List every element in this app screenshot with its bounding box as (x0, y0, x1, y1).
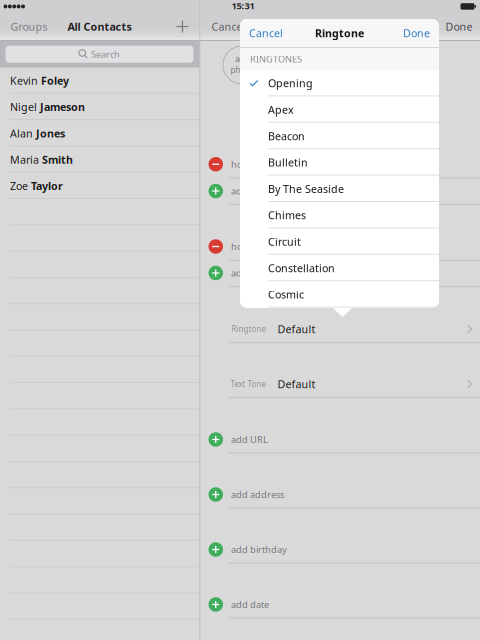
staticText: Bulletin (268, 155, 308, 169)
button[interactable]: Alan Jones (0, 0, 199, 26)
button[interactable]: Constellation (240, 19, 439, 45)
staticText: All Contacts (67, 19, 131, 34)
staticText: Ringtone (315, 26, 364, 40)
staticText: Search (91, 48, 120, 60)
button[interactable]: Cancel (200, 13, 256, 40)
button[interactable]: Maria Smith (0, 0, 199, 26)
button[interactable]: add email (200, 0, 480, 26)
staticText: Nigel Jameson (10, 100, 85, 114)
staticText: Alan Jones (10, 126, 65, 140)
button[interactable]: Done (394, 19, 439, 47)
button[interactable]: Kevin Foley (0, 0, 199, 26)
staticText: Zoe Taylor (10, 179, 63, 193)
staticText: add (235, 54, 249, 64)
button[interactable]: home (200, 0, 480, 27)
button[interactable]: add birthday (200, 0, 480, 26)
staticText: By The Seaside (268, 182, 344, 196)
button[interactable]: Beacon (240, 19, 439, 45)
staticText: 15:31 (231, 0, 254, 12)
staticText: Cancel (249, 26, 283, 40)
staticText: Cosmic (268, 287, 304, 301)
staticText: photo (230, 64, 253, 75)
button[interactable]: Done (437, 13, 480, 40)
staticText: Groups (10, 19, 47, 34)
staticText: RINGTONES (250, 53, 302, 65)
button[interactable]: Add contact (165, 13, 199, 40)
staticText: Apex (268, 102, 294, 117)
staticText: Kevin Foley (10, 74, 69, 88)
staticText: home (231, 158, 257, 170)
button[interactable]: Nigel Jameson (0, 0, 199, 26)
button[interactable]: add phone (200, 0, 480, 26)
staticText: add date (231, 598, 269, 611)
staticText: Text Tone (230, 379, 266, 389)
button[interactable]: Zoe Taylor (0, 0, 199, 26)
staticText: Done (403, 26, 430, 40)
staticText: Constellation (268, 261, 335, 275)
button[interactable]: Opening (240, 19, 439, 45)
staticText: Chimes (268, 208, 306, 222)
staticText: Default (277, 322, 315, 336)
staticText: Opening (268, 76, 313, 90)
button[interactable]: add address (200, 0, 480, 26)
staticText: home (231, 240, 257, 253)
staticText: Maria Smith (10, 152, 73, 167)
button[interactable]: By The Seaside (240, 19, 439, 45)
button[interactable]: Chimes (240, 19, 439, 45)
staticText: Ringtone (231, 324, 266, 334)
staticText: Done (445, 19, 472, 34)
button[interactable]: Cosmic (240, 19, 439, 45)
button[interactable]: Groups (0, 13, 58, 40)
button[interactable]: Apex (240, 19, 439, 45)
staticText: Circuit (268, 234, 301, 249)
button[interactable]: Ringtone (200, 0, 480, 26)
button[interactable]: Add photo (223, 46, 261, 84)
button[interactable]: home (200, 0, 480, 26)
staticText: Default (277, 377, 315, 391)
staticText: Beacon (268, 129, 305, 143)
button[interactable]: Circuit (240, 19, 439, 45)
button[interactable]: add URL (200, 0, 480, 26)
staticText: add phone (231, 185, 279, 197)
button[interactable]: Bulletin (240, 19, 439, 45)
button[interactable]: Cancel (240, 19, 292, 47)
button[interactable]: Text Tone (200, 0, 480, 26)
button[interactable]: add date (200, 0, 480, 26)
staticText: add URL (231, 433, 268, 446)
staticText: add email (231, 267, 273, 279)
staticText: Cancel (211, 19, 245, 34)
staticText: add birthday (231, 543, 287, 556)
staticText: add address (231, 488, 284, 501)
